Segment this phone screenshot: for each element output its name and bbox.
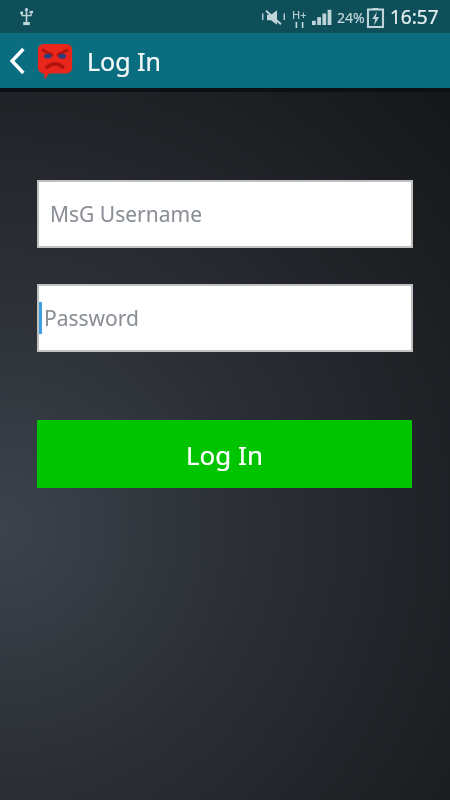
button[interactable]: MsG Username — [39, 182, 411, 246]
button[interactable]: Log In — [37, 420, 412, 488]
button[interactable]: Password — [39, 286, 411, 350]
staticText: Log In — [186, 437, 263, 472]
staticText: 24% — [337, 8, 365, 27]
staticText: Password — [44, 304, 139, 333]
button[interactable]: Back — [0, 33, 34, 88]
staticText: 16:57 — [390, 4, 439, 30]
staticText: MsG Username — [50, 200, 203, 229]
staticText: Log In — [87, 44, 162, 78]
staticText: H+ — [292, 7, 307, 22]
